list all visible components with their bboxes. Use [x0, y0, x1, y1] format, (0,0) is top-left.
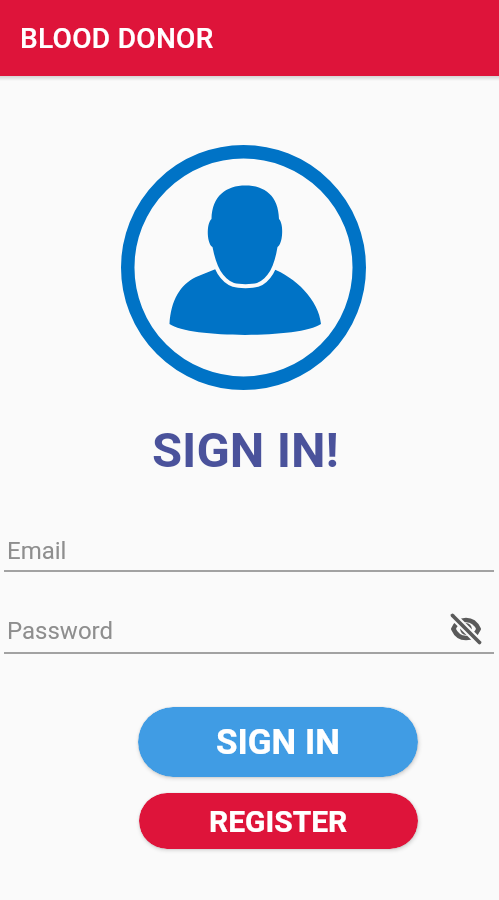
staticText: REGISTER [209, 804, 348, 839]
button[interactable]: REGISTER [139, 793, 418, 849]
button[interactable]: Show password [444, 608, 488, 650]
staticText: Password [7, 617, 114, 645]
staticText: Email [7, 537, 67, 565]
staticText: SIGN IN [216, 722, 340, 763]
button[interactable]: SIGN IN [138, 707, 418, 777]
button[interactable]: Password [0, 612, 499, 654]
staticText: SIGN IN! [152, 422, 339, 479]
staticText: BLOOD DONOR [20, 22, 214, 55]
button[interactable]: Email [0, 530, 499, 572]
